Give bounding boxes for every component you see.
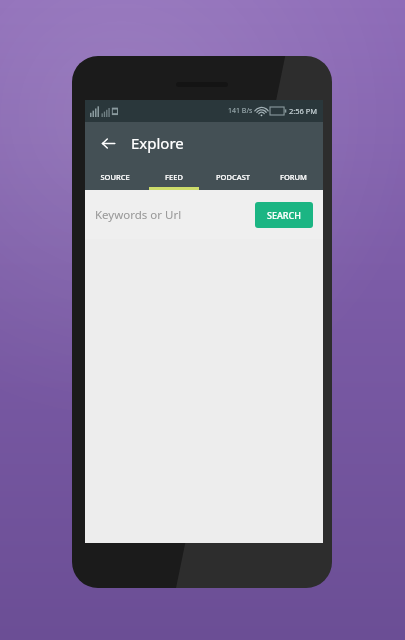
button[interactable]: PODCAST	[203, 163, 263, 190]
staticText: FEED	[165, 172, 183, 182]
staticText: 141 B/s	[228, 106, 253, 116]
staticText: Explore	[131, 133, 184, 153]
button[interactable]: FEED	[144, 163, 203, 190]
staticText: Keywords or Url	[95, 207, 182, 223]
button[interactable]: Back	[93, 128, 123, 158]
staticText: SEARCH	[267, 209, 301, 221]
button[interactable]: FORUM	[263, 163, 323, 190]
staticText: 2:56 PM	[289, 106, 318, 116]
staticText: PODCAST	[216, 172, 250, 182]
staticText: SOURCE	[100, 172, 130, 182]
staticText: FORUM	[280, 172, 307, 182]
button[interactable]: SEARCH	[255, 202, 313, 228]
button[interactable]: Keywords or Url	[95, 207, 247, 223]
button[interactable]: SOURCE	[85, 163, 144, 190]
